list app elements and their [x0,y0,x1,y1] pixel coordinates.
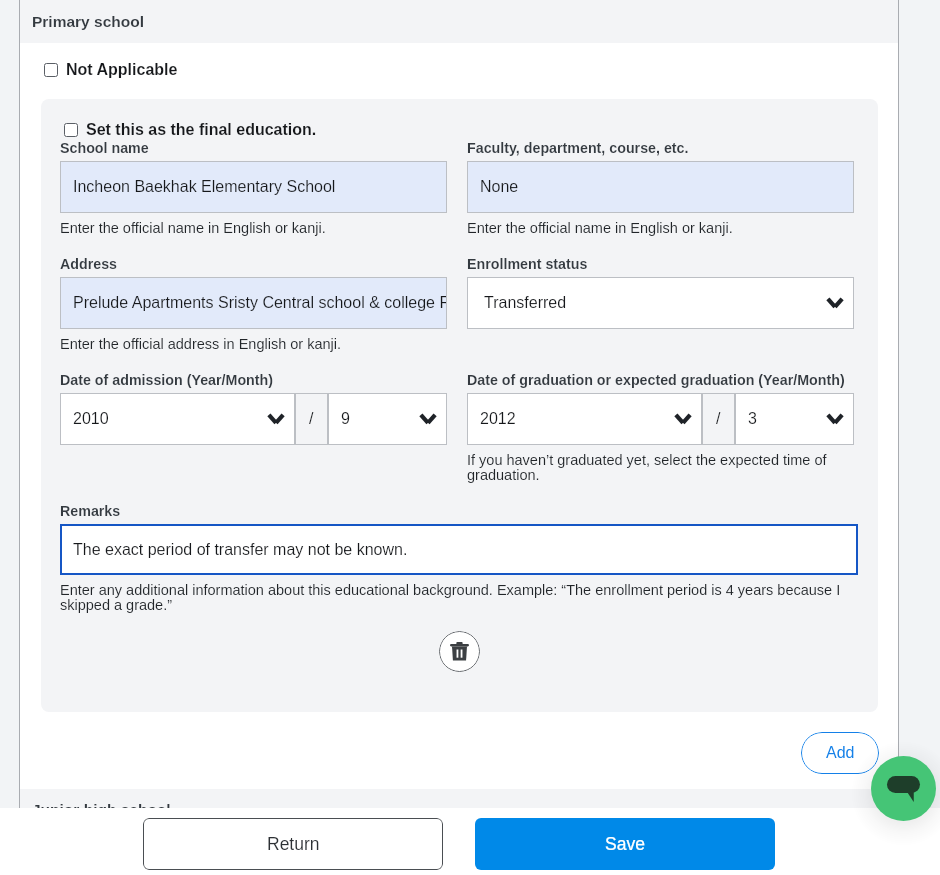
staticText: / [309,410,314,428]
button[interactable]: Add [801,732,879,774]
staticText: Save [605,834,645,854]
staticText: 2010 [73,410,109,428]
staticText: Prelude Apartments Sristy Central school… [73,294,447,312]
button[interactable]: None [467,161,854,213]
button[interactable]: The exact period of transfer may not be … [60,524,858,575]
button[interactable]: Save [475,818,775,870]
button[interactable]: 2010 [60,393,295,445]
staticText: 9 [341,410,350,428]
staticText: Faculty, department, course, etc. [467,140,689,156]
staticText: Set this as the final education. [86,121,317,139]
button[interactable]: Prelude Apartments Sristy Central school… [60,277,447,329]
staticText: Primary school [32,13,144,30]
staticText: / [716,410,721,428]
staticText: Enrollment status [467,256,588,272]
staticText: School name [60,140,149,156]
staticText: Return [267,834,320,854]
staticText: Not Applicable [66,61,178,79]
staticText: Remarks [60,503,121,519]
button[interactable]: 9 [328,393,447,445]
staticText: None [480,178,519,196]
staticText: Date of admission (Year/Month) [60,372,273,388]
staticText: If you haven’t graduated yet, select the… [467,452,827,483]
staticText: Transferred [484,294,567,312]
staticText: Enter the official address in English or… [60,336,342,352]
button[interactable]: Return [143,818,443,870]
staticText: 2012 [480,410,516,428]
staticText: Incheon Baekhak Elementary School [73,178,336,196]
staticText: Address [60,256,118,272]
staticText: Add [826,744,855,762]
button[interactable]: Incheon Baekhak Elementary School [60,161,447,213]
button[interactable]: 2012 [467,393,702,445]
staticText: Enter the official name in English or ka… [467,220,733,236]
button[interactable]: Open support chat [871,756,936,821]
button[interactable]: Not Applicable [44,61,178,79]
staticText: 3 [748,410,757,428]
staticText: The exact period of transfer may not be … [73,541,408,559]
staticText: Enter the official name in English or ka… [60,220,326,236]
button[interactable]: Delete this education entry [439,631,480,672]
button[interactable]: Set this as the final education. [64,121,317,139]
staticText: Enter any additional information about t… [60,582,841,613]
staticText: Junior high school [32,801,171,808]
button[interactable]: 3 [735,393,854,445]
staticText: Date of graduation or expected graduatio… [467,372,845,388]
button[interactable]: Transferred [467,277,854,329]
